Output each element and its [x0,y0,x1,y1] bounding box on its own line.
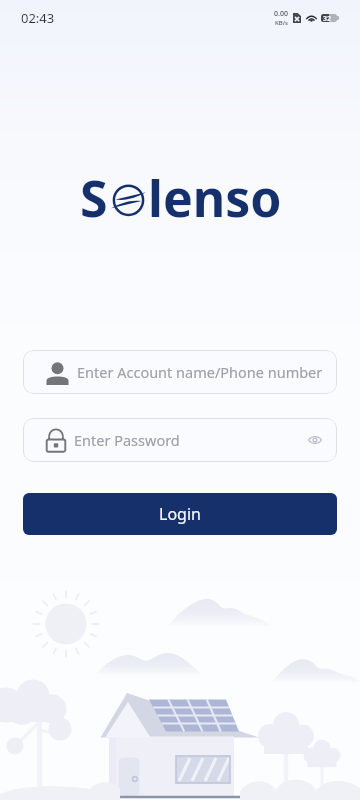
button[interactable]: Show password [304,429,326,451]
staticText: lenso [148,164,282,232]
staticText: Enter Password [74,430,180,450]
button[interactable]: Login [23,493,337,535]
staticText: 32 [323,14,332,22]
staticText: 02:43 [21,9,55,27]
staticText: Login [159,503,201,525]
staticText: KB/s [275,19,288,27]
button[interactable]: Enter Password [23,418,337,462]
button[interactable]: Enter Account name/Phone number [23,350,337,394]
staticText: 0.00 [274,9,288,19]
staticText: S [80,164,108,232]
staticText: Enter Account name/Phone number [77,362,323,382]
